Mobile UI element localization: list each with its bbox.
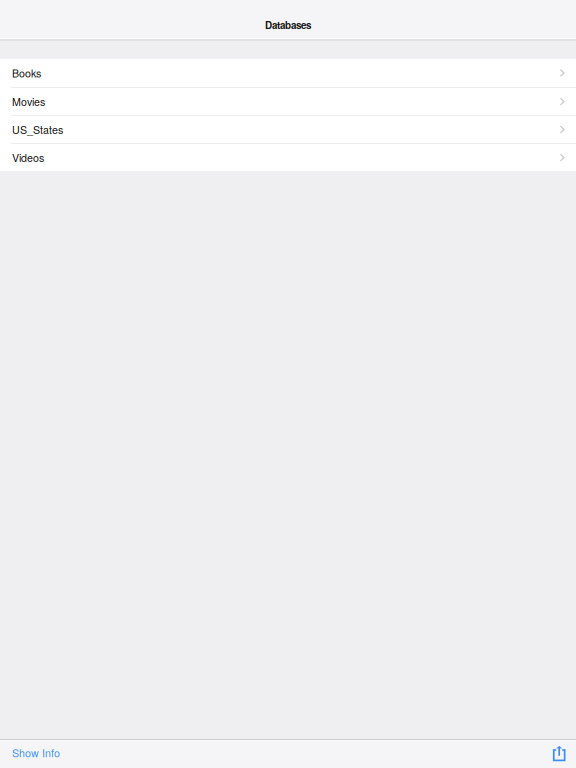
button[interactable]: US_States	[0, 116, 576, 143]
button[interactable]: Share	[543, 741, 576, 768]
staticText: Books	[12, 65, 41, 81]
button[interactable]: Show Info	[0, 741, 71, 768]
button[interactable]: Books	[0, 59, 576, 87]
staticText: Databases	[265, 18, 311, 32]
staticText: Show Info	[12, 745, 60, 760]
button[interactable]: Movies	[0, 88, 576, 115]
staticText: US_States	[12, 122, 63, 137]
staticText: Videos	[12, 150, 44, 165]
button[interactable]: Videos	[0, 144, 576, 171]
staticText: Movies	[12, 94, 45, 109]
